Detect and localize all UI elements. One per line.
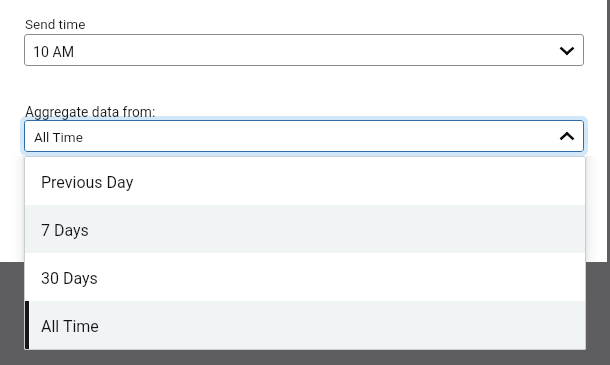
button[interactable]: All Time bbox=[24, 120, 584, 152]
button[interactable]: Previous Day bbox=[25, 157, 585, 205]
staticText: 7 Days bbox=[41, 221, 89, 240]
staticText: Aggregate data from: bbox=[25, 104, 156, 120]
staticText: All Time bbox=[34, 129, 83, 145]
staticText: All Time bbox=[41, 317, 99, 336]
other: Collapse aggregate data options bbox=[554, 120, 580, 152]
staticText: Send time bbox=[25, 16, 86, 32]
button[interactable]: 10 AM bbox=[24, 34, 584, 66]
staticText: 10 AM bbox=[33, 44, 75, 61]
button[interactable]: 7 Days bbox=[25, 205, 585, 253]
other: Expand send time options bbox=[554, 35, 580, 66]
staticText: Previous Day bbox=[41, 173, 134, 192]
button[interactable]: 30 Days bbox=[25, 253, 585, 301]
button[interactable]: All Time bbox=[25, 301, 585, 349]
staticText: 30 Days bbox=[41, 269, 98, 288]
